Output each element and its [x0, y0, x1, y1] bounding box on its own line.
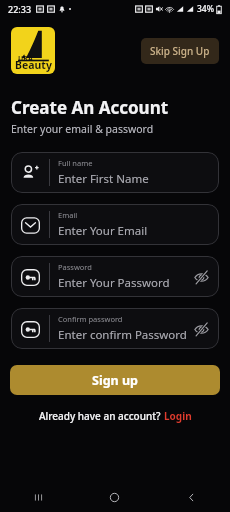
staticText: Sign up — [92, 372, 138, 389]
staticText: Skip Sign Up — [150, 44, 210, 58]
button[interactable]: Email — [11, 204, 219, 245]
staticText: Create An Account — [11, 96, 169, 119]
button[interactable]: Sign up — [10, 365, 220, 395]
staticText: 34% — [197, 3, 214, 15]
staticText: Password — [58, 262, 92, 272]
button[interactable]: Show password — [189, 317, 213, 341]
staticText: Beauty — [15, 58, 52, 72]
button[interactable]: Confirm password — [11, 308, 219, 349]
staticText: Enter your email & password — [11, 122, 154, 136]
staticText: Login — [164, 409, 192, 423]
staticText: Email — [58, 210, 78, 220]
button[interactable]: Home — [76, 482, 153, 512]
button[interactable]: Full name — [11, 152, 219, 193]
button[interactable]: Back — [153, 482, 230, 512]
staticText: Confirm password — [58, 314, 123, 324]
button[interactable]: Login — [164, 409, 192, 423]
staticText: Full name — [58, 158, 93, 168]
button[interactable]: URA Beauty logo — [11, 27, 55, 74]
staticText: Enter First Name — [58, 171, 149, 187]
staticText: Enter confirm Password — [58, 327, 187, 343]
button[interactable]: Recent apps — [0, 482, 76, 512]
staticText: Enter Your Email — [58, 223, 148, 239]
button[interactable]: Show password — [189, 265, 213, 289]
staticText: 22:33 — [8, 3, 32, 15]
button[interactable]: Password — [11, 256, 219, 297]
staticText: Enter Your Password — [58, 275, 170, 291]
staticText: URA — [18, 54, 33, 64]
staticText: Already have an account? — [39, 409, 164, 423]
button[interactable]: Skip Sign Up — [141, 38, 219, 64]
